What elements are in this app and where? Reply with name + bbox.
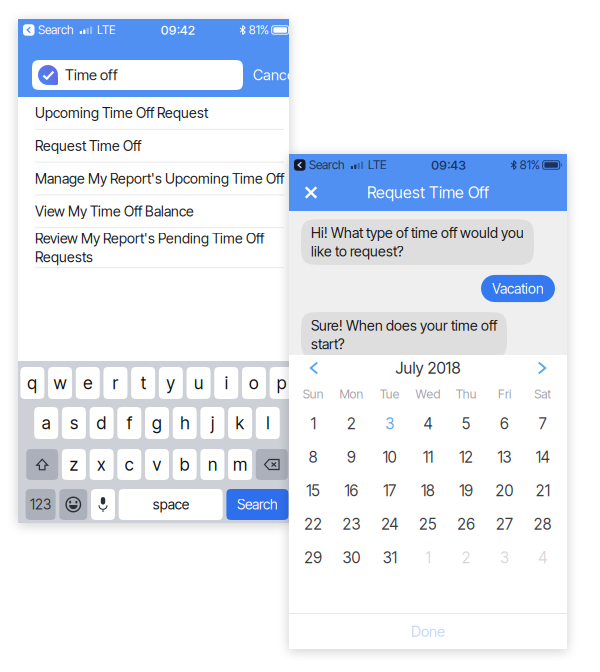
staticText: 21: [536, 481, 550, 500]
staticText: 2: [462, 548, 471, 567]
staticText: 30: [342, 548, 360, 567]
staticText: 10: [383, 448, 397, 467]
button[interactable]: j: [200, 407, 224, 439]
staticText: 20: [496, 481, 514, 500]
button[interactable]: h: [173, 407, 197, 439]
button[interactable]: Search: [23, 23, 74, 37]
staticText: f: [127, 412, 132, 433]
button[interactable]: s: [62, 407, 86, 439]
staticText: 6: [500, 414, 509, 433]
staticText: i: [225, 372, 228, 393]
staticText: Mon: [339, 387, 363, 401]
button[interactable]: f: [117, 407, 141, 439]
button[interactable]: y: [159, 367, 183, 399]
staticText: Search: [237, 496, 278, 513]
staticText: LTE: [368, 158, 387, 172]
button[interactable]: z: [62, 449, 86, 480]
staticText: x: [97, 454, 106, 475]
staticText: 4: [423, 414, 432, 433]
staticText: 26: [457, 515, 475, 534]
staticText: View My Time Off Balance: [35, 203, 194, 220]
button[interactable]: Done: [289, 614, 567, 649]
button[interactable]: m: [228, 449, 252, 480]
button[interactable]: Emoji: [59, 489, 87, 520]
button[interactable]: v: [145, 449, 169, 480]
button[interactable]: Review My Report's Pending Time Off: [18, 228, 296, 268]
button[interactable]: Request Time Off: [18, 130, 296, 163]
staticText: Cancel: [253, 66, 298, 84]
button[interactable]: Previous month: [301, 355, 327, 381]
staticText: like to request?: [311, 243, 404, 260]
staticText: u: [194, 372, 203, 393]
button[interactable]: t: [131, 367, 155, 399]
button[interactable]: View My Time Off Balance: [18, 195, 296, 228]
button[interactable]: space: [119, 489, 223, 520]
button[interactable]: n: [200, 449, 224, 480]
staticText: 81%: [520, 158, 540, 172]
button[interactable]: r: [103, 367, 127, 399]
staticText: 12: [459, 448, 473, 467]
staticText: Wed: [415, 387, 440, 401]
button[interactable]: Upcoming Time Off Request: [18, 97, 296, 130]
staticText: Search: [38, 23, 74, 37]
staticText: Sure! When does your time off: [311, 317, 497, 334]
button[interactable]: e: [76, 367, 100, 399]
staticText: 09:42: [161, 22, 195, 38]
staticText: 24: [381, 515, 398, 534]
button[interactable]: i: [214, 367, 238, 399]
staticText: 3: [385, 414, 394, 433]
button[interactable]: 123: [26, 489, 56, 520]
staticText: 8: [309, 448, 318, 467]
button[interactable]: Shift: [26, 449, 58, 480]
button[interactable]: b: [173, 449, 197, 480]
staticText: y: [166, 372, 175, 393]
button[interactable]: Search: [294, 158, 345, 172]
button[interactable]: Next month: [529, 355, 555, 381]
button[interactable]: k: [228, 407, 252, 439]
button[interactable]: x: [90, 449, 114, 480]
staticText: k: [236, 412, 245, 433]
button[interactable]: g: [145, 407, 169, 439]
staticText: m: [233, 454, 247, 475]
button[interactable]: Vacation: [481, 275, 555, 302]
staticText: o: [249, 372, 259, 393]
button[interactable]: c: [117, 449, 141, 480]
button[interactable]: l: [256, 407, 280, 439]
staticText: 3: [500, 548, 509, 567]
staticText: w: [53, 372, 66, 393]
button[interactable]: Close: [296, 176, 326, 208]
staticText: t: [141, 372, 146, 393]
button[interactable]: Search: [226, 489, 288, 520]
staticText: l: [266, 412, 269, 433]
button[interactable]: u: [186, 367, 210, 399]
button[interactable]: d: [90, 407, 114, 439]
staticText: Tue: [380, 387, 400, 401]
button[interactable]: q: [20, 367, 44, 399]
staticText: 25: [419, 515, 437, 534]
staticText: q: [27, 372, 37, 393]
button[interactable]: Cancel: [253, 66, 298, 84]
button[interactable]: p: [270, 367, 294, 399]
button[interactable]: Delete: [256, 449, 288, 480]
staticText: 1: [425, 548, 430, 567]
staticText: 15: [306, 481, 320, 500]
staticText: Sat: [534, 387, 551, 401]
staticText: 18: [421, 481, 435, 500]
staticText: Fri: [498, 387, 511, 401]
staticText: 16: [344, 481, 358, 500]
staticText: z: [69, 454, 78, 475]
button[interactable]: a: [34, 407, 58, 439]
staticText: July 2018: [395, 358, 460, 378]
staticText: 22: [304, 515, 322, 534]
staticText: Hi! What type of time off would you: [311, 224, 524, 241]
staticText: 9: [347, 448, 356, 467]
staticText: Review My Report's Pending Time Off: [35, 230, 264, 247]
staticText: 13: [498, 448, 512, 467]
button[interactable]: Manage My Report's Upcoming Time Off: [18, 163, 296, 195]
button[interactable]: o: [242, 367, 266, 399]
staticText: 11: [423, 448, 433, 467]
button[interactable]: w: [48, 367, 72, 399]
staticText: 19: [459, 481, 473, 500]
button[interactable]: Dictate: [91, 489, 115, 520]
staticText: Thu: [456, 387, 477, 401]
